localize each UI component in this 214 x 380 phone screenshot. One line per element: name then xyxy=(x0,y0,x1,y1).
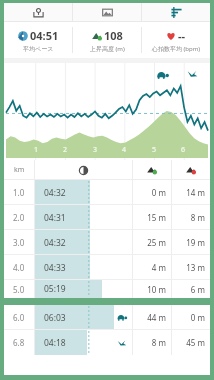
staticText: 3 xyxy=(93,145,98,155)
staticText: -- xyxy=(178,28,186,43)
staticText: 0 m xyxy=(190,312,205,323)
staticText: 5 xyxy=(152,145,157,155)
button[interactable]: 6.0 xyxy=(4,305,210,330)
staticText: 10 m xyxy=(147,284,166,295)
staticText: 平均ペース xyxy=(23,45,54,53)
staticText: 14 m xyxy=(186,187,205,198)
button[interactable]: 04:51 xyxy=(4,22,72,58)
staticText: 1 xyxy=(34,145,39,155)
staticText: 6 xyxy=(181,145,186,155)
staticText: 108 xyxy=(104,28,123,43)
button[interactable]: 2.0 xyxy=(4,205,210,230)
button[interactable]: -- xyxy=(142,22,210,58)
button[interactable]: Map xyxy=(4,3,72,21)
staticText: 19 m xyxy=(186,237,205,248)
button[interactable]: Photos xyxy=(73,3,141,21)
button[interactable]: 6.8 xyxy=(4,330,210,355)
staticText: 4 m xyxy=(151,262,166,273)
button[interactable]: 5.0 xyxy=(4,280,210,298)
staticText: 45 m xyxy=(186,337,205,348)
staticText: 04:32 xyxy=(44,187,66,199)
staticText: 04:18 xyxy=(44,337,66,349)
staticText: 8 m xyxy=(151,337,166,348)
staticText: 3.0 xyxy=(13,237,25,248)
staticText: 05:19 xyxy=(44,283,66,295)
staticText: 6.0 xyxy=(13,312,25,323)
staticText: 8 m xyxy=(190,212,205,223)
staticText: 4 xyxy=(122,145,127,155)
staticText: 4.0 xyxy=(13,262,25,273)
staticText: 15 m xyxy=(147,212,166,223)
button[interactable]: 4.0 xyxy=(4,255,210,280)
staticText: 2.0 xyxy=(13,212,25,223)
staticText: 13 m xyxy=(186,262,205,273)
staticText: 1.0 xyxy=(13,187,25,198)
staticText: 6.8 xyxy=(13,337,25,348)
staticText: 心拍数平均 (bpm) xyxy=(152,45,201,53)
staticText: 5.0 xyxy=(13,284,25,295)
button[interactable]: 108 xyxy=(73,22,141,58)
staticText: 04:51 xyxy=(30,28,59,43)
staticText: 0 m xyxy=(151,187,166,198)
staticText: 04:32 xyxy=(44,237,66,249)
staticText: 6 m xyxy=(190,284,205,295)
staticText: 04:31 xyxy=(44,212,66,224)
button[interactable]: Splits xyxy=(142,3,210,21)
staticText: 44 m xyxy=(147,312,166,323)
staticText: 上昇高度 (m) xyxy=(90,45,125,53)
button[interactable]: 1.0 xyxy=(4,180,210,205)
staticText: 2 xyxy=(63,145,68,155)
staticText: 06:03 xyxy=(44,312,66,324)
staticText: km xyxy=(14,165,25,175)
staticText: 04:33 xyxy=(44,262,66,274)
button[interactable]: 3.0 xyxy=(4,230,210,255)
staticText: 25 m xyxy=(147,237,166,248)
